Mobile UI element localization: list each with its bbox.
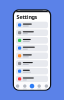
button[interactable] — [16, 22, 48, 28]
button[interactable]: Search — [21, 84, 28, 90]
button[interactable]: Alerts — [36, 84, 43, 90]
button[interactable]: Profile — [43, 84, 50, 90]
button[interactable] — [16, 60, 48, 67]
button[interactable] — [16, 45, 48, 51]
button[interactable] — [16, 37, 48, 44]
button[interactable] — [16, 76, 48, 82]
button[interactable]: Add — [28, 84, 36, 90]
staticText: Settings — [16, 13, 37, 20]
button[interactable] — [16, 68, 48, 74]
button[interactable]: Home — [14, 84, 21, 90]
button[interactable] — [16, 29, 48, 36]
button[interactable] — [16, 52, 48, 59]
